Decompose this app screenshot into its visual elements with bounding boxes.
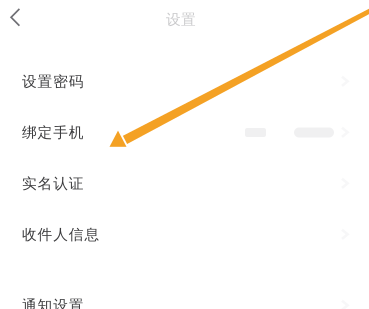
button[interactable]: 绑定手机 (0, 107, 369, 158)
button[interactable]: 实名认证 (0, 158, 369, 209)
staticText: 收件人信息 (22, 225, 99, 243)
button[interactable]: 收件人信息 (0, 209, 369, 260)
button[interactable]: 设置密码 (0, 56, 369, 107)
staticText: 实名认证 (22, 174, 84, 192)
button[interactable]: Back (0, 0, 33, 34)
staticText: 通知设置 (22, 296, 84, 309)
staticText: 设置 (166, 10, 196, 28)
staticText: 绑定手机 (22, 123, 84, 141)
button[interactable]: 通知设置 (0, 280, 369, 309)
staticText: 设置密码 (22, 72, 84, 90)
